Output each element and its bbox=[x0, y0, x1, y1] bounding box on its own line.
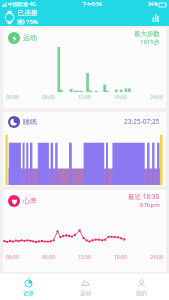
staticText: 我的 bbox=[136, 290, 147, 297]
staticText: 最近 18:30 bbox=[128, 192, 160, 201]
staticText: 24:00 bbox=[150, 254, 163, 260]
button[interactable]: 睡眠 bbox=[3, 112, 166, 186]
button[interactable]: 记录 bbox=[0, 274, 57, 300]
staticText: 下午6:54 bbox=[82, 1, 102, 8]
staticText: 18:00 bbox=[114, 254, 127, 260]
staticText: 最大步数 bbox=[134, 30, 160, 38]
staticText: 1615步 bbox=[140, 38, 160, 46]
button[interactable]: 心率 bbox=[3, 190, 166, 272]
button[interactable]: 运动 bbox=[3, 28, 166, 108]
staticText: 运动 bbox=[23, 33, 37, 42]
staticText: 12:00 bbox=[78, 94, 91, 100]
staticText: 00:00 bbox=[6, 254, 19, 260]
staticText: 23:25-07:25 bbox=[124, 117, 160, 126]
staticText: 睡眠 bbox=[23, 117, 37, 126]
staticText: 06:00 bbox=[42, 94, 55, 100]
staticText: 24:00 bbox=[150, 94, 163, 100]
staticText: 已连接 bbox=[18, 9, 38, 17]
staticText: 67bpm bbox=[140, 201, 160, 209]
staticText: 06:00 bbox=[42, 254, 55, 260]
staticText: 00:00 bbox=[6, 94, 19, 100]
staticText: 34% bbox=[148, 1, 158, 8]
staticText: 75% bbox=[26, 18, 38, 26]
staticText: 心率 bbox=[23, 196, 37, 205]
button[interactable]: Statistics bbox=[149, 10, 164, 25]
staticText: 中国联通 4G bbox=[8, 1, 36, 8]
button[interactable]: 运动 bbox=[57, 274, 113, 300]
staticText: 运动 bbox=[80, 290, 91, 297]
button[interactable]: 我的 bbox=[113, 274, 169, 300]
staticText: 18:00 bbox=[114, 94, 127, 100]
staticText: 12:00 bbox=[78, 254, 91, 260]
staticText: 记录 bbox=[23, 290, 34, 297]
